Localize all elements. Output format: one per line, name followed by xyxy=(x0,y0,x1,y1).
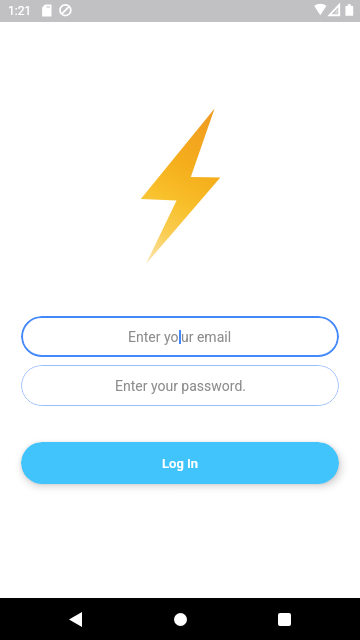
button[interactable]: Home xyxy=(156,598,204,640)
button[interactable]: Recent apps xyxy=(260,598,308,640)
button[interactable]: Back xyxy=(51,598,99,640)
staticText: Enter yo xyxy=(128,329,179,345)
button[interactable]: Log In xyxy=(21,442,339,484)
staticText: 1:21 xyxy=(8,4,32,18)
staticText: ur email xyxy=(181,329,232,345)
staticText: Enter your password. xyxy=(115,378,246,394)
staticText: Log In xyxy=(162,456,198,471)
button[interactable]: Enter yo xyxy=(21,316,339,357)
button[interactable]: Enter your password. xyxy=(21,365,339,406)
